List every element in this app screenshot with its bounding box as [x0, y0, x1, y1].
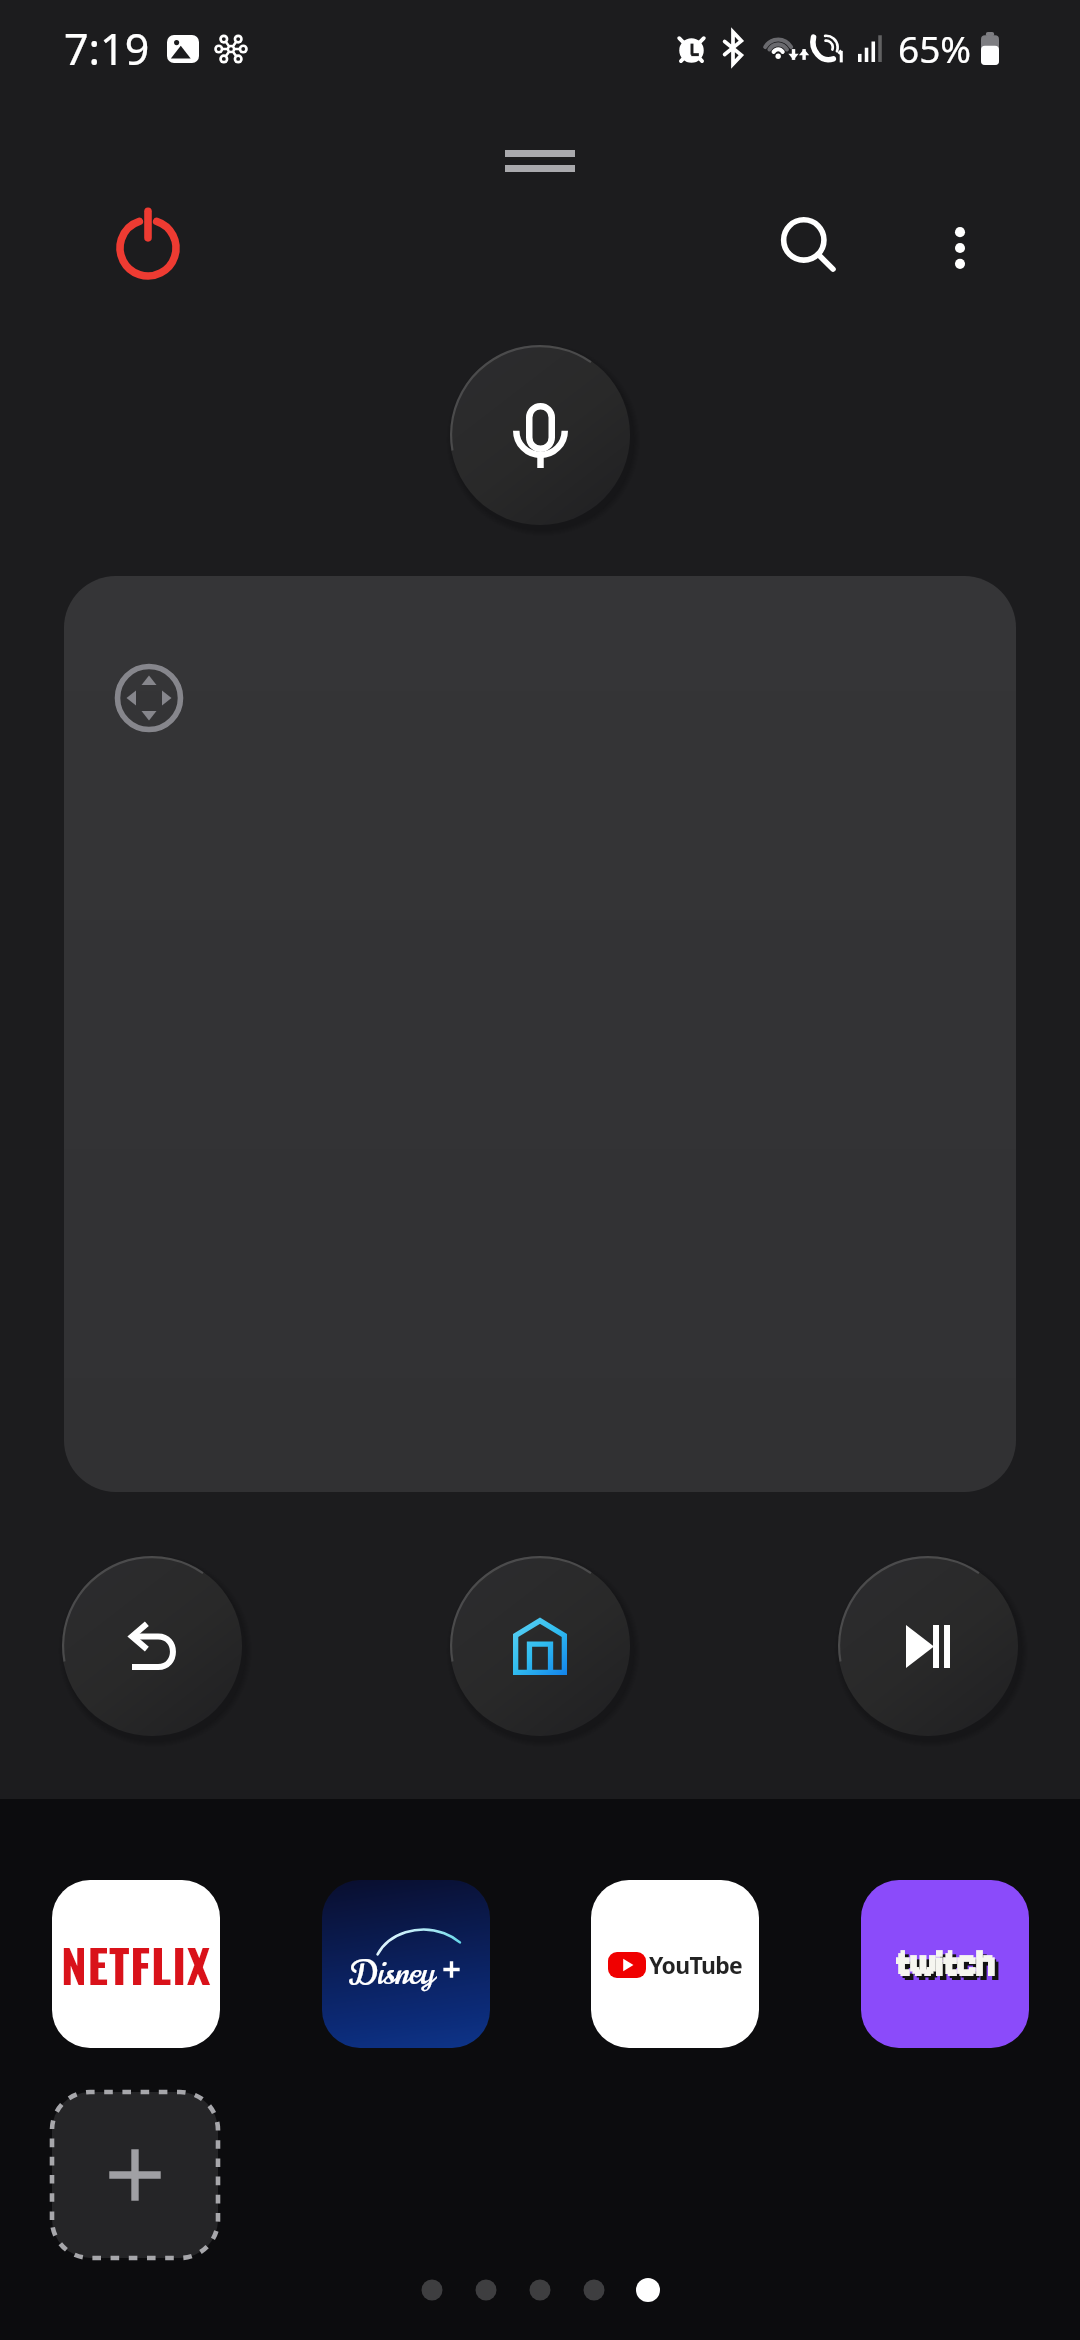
button[interactable]: YouTube — [591, 1880, 759, 2048]
button[interactable]: Power — [104, 202, 192, 290]
button[interactable]: Search — [762, 200, 858, 296]
button[interactable]: Twitch — [861, 1880, 1029, 2048]
button[interactable]: Home — [450, 1556, 630, 1736]
staticText: Disney — [350, 1950, 436, 1997]
button[interactable]: Back — [62, 1556, 242, 1736]
button[interactable]: Touchpad — [64, 576, 1016, 1492]
button[interactable]: More options — [912, 200, 1008, 296]
staticText: YouTube — [649, 1949, 743, 1980]
staticText: twitch — [896, 1941, 995, 1988]
button[interactable]: Netflix — [52, 1880, 220, 2048]
staticText: 7:19 — [64, 19, 150, 78]
button[interactable]: Add app — [52, 2092, 218, 2258]
button[interactable]: Play or pause — [838, 1556, 1018, 1736]
button[interactable]: Disney Plus — [322, 1880, 490, 2048]
staticText: twitch — [900, 1945, 999, 1992]
staticText: 65% — [898, 23, 972, 73]
button[interactable]: Voice search — [450, 345, 630, 525]
staticText: NETFLIX — [61, 1930, 212, 1998]
